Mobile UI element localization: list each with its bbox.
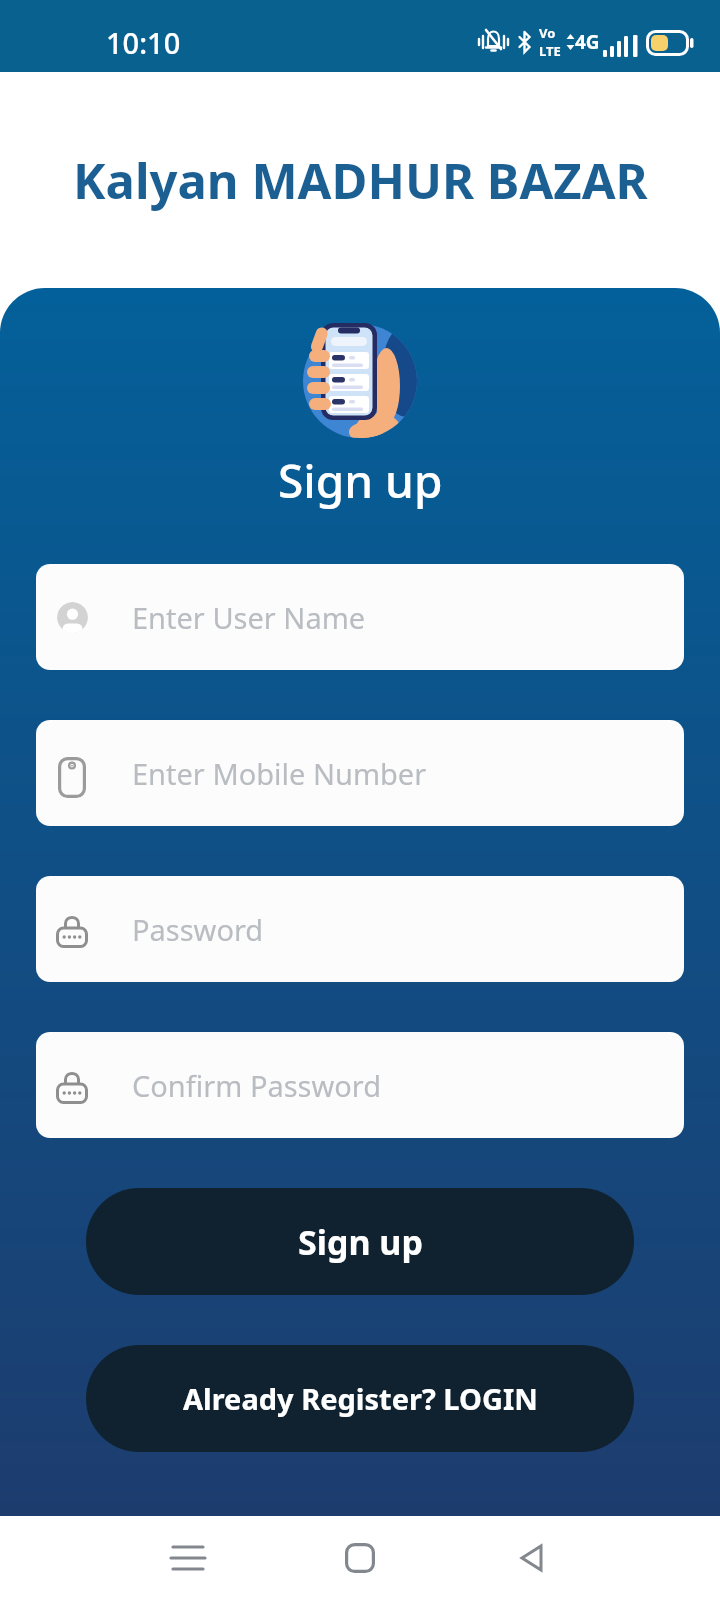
staticText: 4G (575, 29, 600, 55)
button[interactable]: Enter User Name (36, 564, 684, 670)
staticText: Confirm Password (132, 1066, 382, 1105)
staticText: Sign up (278, 449, 443, 512)
staticText: Sign up (298, 1219, 423, 1265)
button[interactable]: Already Register? LOGIN (86, 1345, 634, 1452)
button[interactable]: Sign up (86, 1188, 634, 1295)
button[interactable] (128, 1516, 248, 1600)
staticText: 10:10 (106, 23, 181, 62)
staticText: Enter Mobile Number (132, 754, 427, 793)
button[interactable]: Confirm Password (36, 1032, 684, 1138)
staticText: Enter User Name (132, 598, 366, 637)
staticText: LTE (539, 42, 561, 60)
staticText: Vo (539, 24, 556, 42)
button[interactable] (300, 1516, 420, 1600)
button[interactable]: Password (36, 876, 684, 982)
staticText: Password (132, 910, 264, 949)
staticText: Kalyan MADHUR BAZAR (73, 147, 648, 214)
button[interactable]: Enter Mobile Number (36, 720, 684, 826)
staticText: Already Register? LOGIN (183, 1379, 538, 1418)
button[interactable] (472, 1516, 592, 1600)
